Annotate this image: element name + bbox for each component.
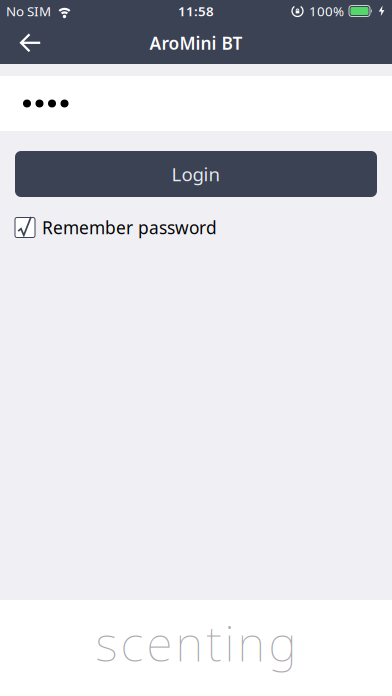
staticText: No SIM — [6, 2, 51, 20]
staticText: AroMini BT — [149, 31, 242, 54]
staticText: 11:58 — [178, 2, 214, 20]
button[interactable]: Password — [0, 76, 392, 131]
button[interactable]: Remember password — [0, 216, 392, 239]
staticText: scenting — [95, 611, 296, 675]
staticText: Remember password — [42, 216, 217, 239]
button[interactable]: Back — [0, 22, 53, 64]
staticText: 100% — [309, 2, 344, 20]
button[interactable]: Login — [15, 151, 377, 197]
staticText: Login — [171, 162, 220, 186]
